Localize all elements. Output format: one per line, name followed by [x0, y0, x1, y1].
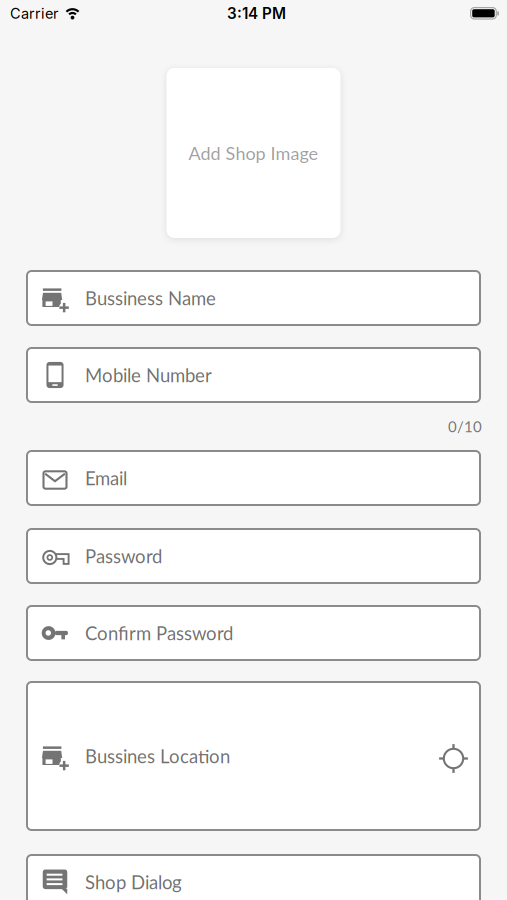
staticText: Email	[85, 467, 127, 489]
staticText: Bussines Location	[85, 745, 230, 767]
staticText: Bussiness Name	[85, 287, 216, 309]
staticText: 3:14 PM	[227, 4, 286, 23]
button[interactable]: Email	[26, 450, 481, 506]
button[interactable]: Bussines Location	[26, 681, 481, 831]
staticText: Mobile Number	[85, 364, 212, 386]
button[interactable]: Use current location	[439, 744, 468, 773]
staticText: Confirm Password	[85, 622, 233, 644]
staticText: Password	[85, 545, 162, 567]
button[interactable]: Password	[26, 528, 481, 584]
staticText: Shop Dialog	[85, 871, 182, 893]
button[interactable]: Bussiness Name	[26, 270, 481, 326]
staticText: Add Shop Image	[188, 142, 318, 164]
button[interactable]: Shop Dialog	[26, 854, 481, 900]
staticText: 0/10	[448, 417, 482, 436]
button[interactable]: Mobile Number	[26, 347, 481, 403]
button[interactable]: Confirm Password	[26, 605, 481, 661]
staticText: Carrier	[10, 5, 58, 22]
button[interactable]: Add Shop Image	[166, 68, 340, 238]
